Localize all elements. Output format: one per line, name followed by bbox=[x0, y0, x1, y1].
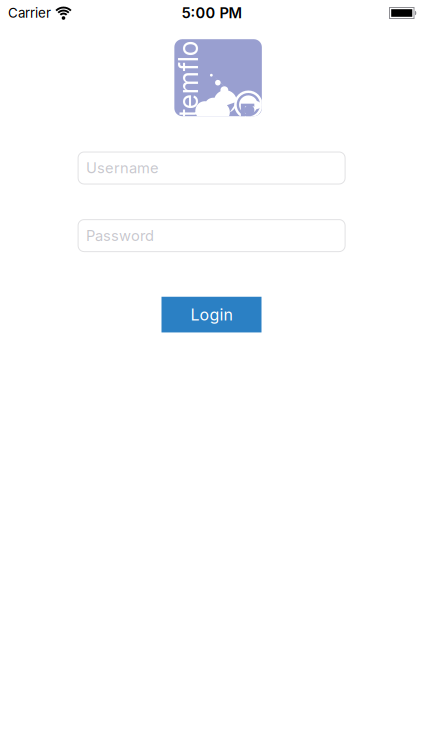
button[interactable]: Username bbox=[78, 152, 345, 184]
staticText: Password bbox=[86, 227, 154, 244]
button[interactable]: Login bbox=[161, 297, 261, 332]
staticText: Carrier bbox=[8, 5, 51, 21]
button[interactable]: Password bbox=[78, 220, 345, 252]
staticText: Login bbox=[190, 305, 232, 324]
staticText: temflo bbox=[150, 63, 227, 94]
staticText: Username bbox=[86, 159, 159, 177]
staticText: 5:00 PM bbox=[181, 4, 242, 22]
